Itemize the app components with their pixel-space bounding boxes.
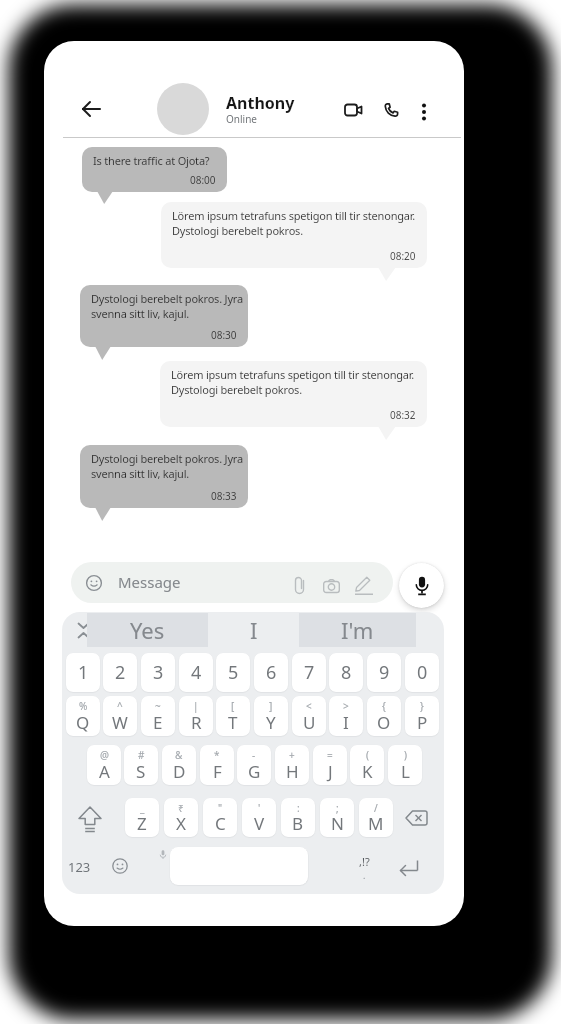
button[interactable]: [: [216, 696, 250, 736]
staticText: Online: [226, 112, 257, 126]
button[interactable]: [77, 623, 90, 638]
staticText: _: [140, 801, 145, 815]
staticText: ^: [117, 699, 123, 713]
staticText: 08:32: [390, 408, 416, 422]
button[interactable]: 1: [66, 653, 100, 692]
staticText: svenna sitt liv, kajul.: [91, 466, 190, 481]
button[interactable]: [383, 102, 401, 120]
staticText: 1: [78, 660, 89, 685]
staticText: S: [136, 760, 146, 783]
button[interactable]: ': [242, 798, 276, 837]
button[interactable]: [398, 859, 420, 877]
button[interactable]: I: [208, 613, 299, 647]
button[interactable]: {: [367, 696, 401, 736]
button[interactable]: 3: [141, 653, 175, 692]
button[interactable]: 8: [329, 653, 363, 692]
staticText: }: [420, 699, 424, 713]
staticText: K: [362, 760, 373, 783]
staticText: I'm: [341, 615, 374, 645]
button[interactable]: 4: [179, 653, 213, 692]
button[interactable]: [344, 102, 364, 118]
staticText: R: [191, 711, 202, 734]
staticText: B: [292, 812, 304, 835]
button[interactable]: [405, 810, 428, 827]
staticText: U: [303, 711, 316, 734]
staticText: |: [193, 699, 199, 713]
button[interactable]: I'm: [299, 613, 416, 647]
staticText: Yes: [130, 615, 165, 645]
button[interactable]: ): [388, 745, 422, 785]
button[interactable]: *: [200, 745, 234, 785]
staticText: L: [401, 760, 410, 783]
staticText: 123: [68, 858, 91, 876]
staticText: 7: [304, 660, 315, 685]
button[interactable]: 7: [292, 653, 326, 692]
button[interactable]: 5: [216, 653, 250, 692]
button[interactable]: ,!?: [349, 852, 379, 882]
staticText: >: [343, 699, 349, 713]
staticText: 3: [153, 660, 164, 685]
button[interactable]: |: [179, 696, 213, 736]
button[interactable]: ]: [254, 696, 288, 736]
staticText: .: [363, 869, 366, 881]
button[interactable]: [80, 100, 102, 118]
staticText: 0: [417, 660, 428, 685]
staticText: &: [175, 748, 183, 762]
button[interactable]: [75, 804, 105, 834]
staticText: <: [306, 699, 312, 713]
button[interactable]: Lörem ipsum tetrafuns spetigon till tir …: [161, 202, 427, 268]
button[interactable]: %: [66, 696, 100, 736]
button[interactable]: }: [405, 696, 439, 736]
button[interactable]: Dystologi berebelt pokros. Jyra: [80, 285, 248, 347]
button[interactable]: [112, 858, 128, 874]
button[interactable]: Lörem ipsum tetrafuns spetigon till tir …: [160, 361, 427, 427]
button[interactable]: /: [359, 798, 393, 837]
button[interactable]: 0: [405, 653, 439, 692]
staticText: ]: [269, 699, 273, 713]
staticText: ;: [336, 801, 339, 815]
staticText: T: [228, 711, 238, 734]
button[interactable]: [399, 563, 444, 608]
button[interactable]: ": [203, 798, 237, 837]
button[interactable]: 2: [103, 653, 137, 692]
staticText: ): [404, 748, 407, 762]
button[interactable]: 6: [254, 653, 288, 692]
staticText: Dystologi berebelt pokros. Jyra: [91, 291, 243, 306]
button[interactable]: Yes: [87, 613, 208, 647]
button[interactable]: Dystologi berebelt pokros. Jyra: [80, 445, 248, 508]
button[interactable]: Message: [71, 562, 393, 603]
button[interactable]: <: [292, 696, 326, 736]
staticText: *: [214, 748, 220, 762]
button[interactable]: #: [124, 745, 158, 785]
staticText: 08:00: [190, 173, 216, 187]
staticText: @: [100, 748, 109, 762]
button[interactable]: :: [281, 798, 315, 837]
button[interactable]: _: [125, 798, 159, 837]
button[interactable]: ~: [141, 696, 175, 736]
staticText: A: [99, 760, 110, 783]
staticText: svenna sitt liv, kajul.: [91, 306, 190, 321]
button[interactable]: =: [313, 745, 347, 785]
button[interactable]: (: [350, 745, 384, 785]
button[interactable]: +: [275, 745, 309, 785]
staticText: ': [258, 801, 261, 815]
button[interactable]: -: [237, 745, 271, 785]
button[interactable]: Is there traffic at Ojota?: [82, 147, 227, 192]
staticText: H: [286, 760, 299, 783]
button[interactable]: 9: [367, 653, 401, 692]
button[interactable]: &: [162, 745, 196, 785]
button[interactable]: ;: [320, 798, 354, 837]
staticText: (: [366, 748, 369, 762]
button[interactable]: >: [329, 696, 363, 736]
staticText: Dystologi berebelt pokros.: [172, 223, 303, 238]
button[interactable]: ₹: [164, 798, 198, 837]
button[interactable]: 123: [64, 852, 94, 882]
staticText: 4: [191, 660, 202, 685]
staticText: ": [218, 801, 223, 815]
button[interactable]: [157, 83, 209, 135]
button[interactable]: ^: [103, 696, 137, 736]
button[interactable]: [418, 102, 430, 122]
staticText: 08:30: [211, 328, 237, 342]
button[interactable]: @: [87, 745, 121, 785]
